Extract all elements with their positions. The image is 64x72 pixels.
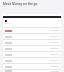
button[interactable] [3,40,61,45]
button[interactable] [3,28,61,33]
button[interactable] [3,64,61,69]
button[interactable] [3,34,61,39]
button[interactable] [3,52,61,57]
button[interactable] [3,46,61,51]
button[interactable] [3,70,61,72]
button[interactable] [3,58,61,63]
staticText: Move Money on the go [3,2,38,6]
